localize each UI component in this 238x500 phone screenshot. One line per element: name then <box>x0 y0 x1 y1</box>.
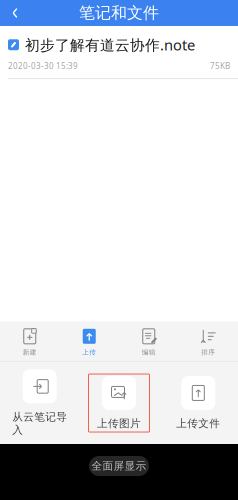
staticText: 笔记和文件 <box>79 3 159 23</box>
button[interactable]: 上传图片 <box>79 362 159 444</box>
staticText: 编辑 <box>142 348 156 356</box>
staticText: 新建 <box>23 348 37 356</box>
staticText: 上传文件 <box>176 417 220 430</box>
staticText: 2020-03-30 15:39 <box>8 60 78 71</box>
staticText: 上传 <box>82 348 96 356</box>
button[interactable]: 上传文件 <box>159 362 238 444</box>
button[interactable]: 排序 <box>178 322 238 361</box>
button[interactable]: 新建 <box>0 322 59 361</box>
button[interactable]: 全面屏显示 <box>89 456 149 476</box>
button[interactable]: 编辑 <box>119 322 178 361</box>
button[interactable]: 初步了解有道云协作.note <box>0 26 238 78</box>
staticText: 初步了解有道云协作.note <box>25 35 195 54</box>
button[interactable]: 上传 <box>59 322 119 361</box>
staticText: 全面屏显示 <box>91 459 146 472</box>
button[interactable]: 返回 <box>0 0 30 26</box>
staticText: 排序 <box>201 348 215 356</box>
button[interactable]: 从云笔记导入 <box>0 362 79 444</box>
staticText: 75KB <box>210 60 230 71</box>
staticText: 上传图片 <box>97 417 141 430</box>
staticText: 从云笔记导入 <box>12 410 67 437</box>
